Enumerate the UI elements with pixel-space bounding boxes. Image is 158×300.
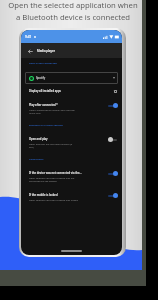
staticText: Open and play bbox=[29, 137, 48, 141]
staticText: Open the selected application when a Blu… bbox=[1, 0, 145, 22]
staticText: CONDITIONS bbox=[29, 158, 44, 161]
button[interactable]: Switch on bbox=[108, 193, 117, 198]
staticText: 9:41 bbox=[25, 35, 32, 39]
button[interactable]: Select application bbox=[25, 72, 118, 84]
staticText: Spotify bbox=[36, 76, 46, 80]
button[interactable]: If the mobile is locked bbox=[21, 193, 122, 201]
staticText: Open and play the last audio session (if… bbox=[29, 142, 73, 149]
staticText: If the device was not connected via the.… bbox=[29, 171, 82, 175]
button[interactable]: Open and play bbox=[21, 137, 122, 149]
staticText: If the mobile is locked bbox=[29, 193, 58, 197]
button[interactable]: Display all installed apps bbox=[114, 90, 117, 93]
button[interactable]: Display all installed apps bbox=[21, 89, 122, 93]
button[interactable]: Play after connected * bbox=[21, 103, 122, 115]
staticText: RESTORE LAST AUDIO SESSION bbox=[29, 124, 63, 127]
button[interactable]: Switch on bbox=[108, 103, 117, 108]
staticText: OPEN AFTER CONNECTED bbox=[29, 62, 58, 65]
button[interactable]: If the device was not connected via the.… bbox=[21, 171, 122, 183]
staticText: Now is supported by Spotify and YouTube … bbox=[29, 108, 75, 115]
staticText: Display all installed apps bbox=[29, 89, 61, 93]
button[interactable]: Switch off bbox=[108, 137, 117, 142]
staticText: Play after connected * bbox=[29, 103, 58, 107]
button[interactable]: Back bbox=[26, 47, 34, 55]
staticText: Open selected App even if device was not… bbox=[29, 176, 75, 183]
staticText: Media player bbox=[37, 49, 55, 53]
staticText: Open selected App even if device was loc… bbox=[29, 198, 78, 201]
button[interactable]: Switch on bbox=[108, 171, 117, 176]
